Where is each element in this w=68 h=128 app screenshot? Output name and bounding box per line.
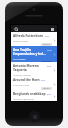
button[interactable]: Search [13,26,19,32]
staticText: Around the Horn [13,78,40,82]
button[interactable]: Antonio Moreno Taqueria [11,62,57,76]
button[interactable]: Menu [49,26,55,32]
staticText: Christina Berglund [13,97,35,100]
button[interactable]: details [41,87,52,90]
staticText: Alfredo Futterkiste [13,34,44,38]
button[interactable]: Home [29,111,40,122]
button[interactable]: Around the Horn [11,76,57,90]
staticText: Ana Trujillo [13,57,26,60]
staticText: Antonio Moreno Taqueria [13,64,46,72]
staticText: Ana Trujillo Emparedados y helados [13,48,46,56]
button[interactable]: Berglunds snabbkop [11,90,57,101]
staticText: details [43,43,50,46]
staticText: Thomas Hardy [13,83,30,86]
staticText: edit [47,64,52,67]
button[interactable]: details [41,43,52,46]
button[interactable]: Ana Trujillo Emparedados y helados [11,46,57,62]
staticText: edit [45,34,50,37]
staticText: Berglunds snabbkop [13,92,46,96]
staticText: Maria Anders [13,39,29,42]
staticText: edit [47,92,52,95]
staticText: Antonio Moreno [13,73,32,76]
staticText: edit [41,78,46,81]
button[interactable]: Alfredo Futterkiste [11,32,57,46]
staticText: MEX [47,48,52,51]
staticText: details [43,87,50,90]
